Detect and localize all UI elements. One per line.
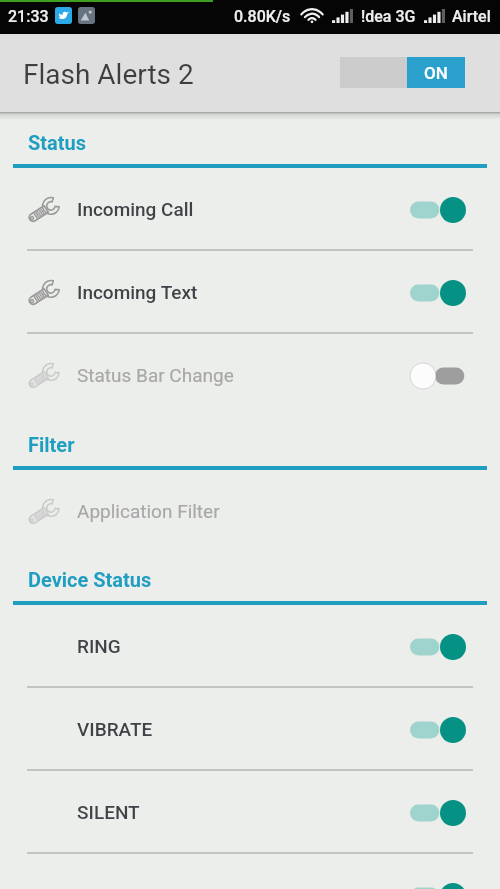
button[interactable]: RING xyxy=(0,605,500,688)
button[interactable]: SILENT xyxy=(0,771,500,854)
staticText: Filter xyxy=(28,433,75,456)
staticText: Incoming Call xyxy=(77,198,194,220)
staticText: VIBRATE xyxy=(77,718,153,740)
staticText: ON xyxy=(424,63,448,83)
staticText: Device Status xyxy=(28,568,152,591)
staticText: 0.80K/s xyxy=(234,7,291,26)
staticText: Application Filter xyxy=(77,500,220,522)
staticText: !dea 3G xyxy=(361,7,416,26)
button[interactable]: Incoming Call xyxy=(0,168,500,251)
staticText: SILENT xyxy=(77,801,140,823)
staticText: RING xyxy=(77,635,121,657)
button[interactable]: Status Bar Change xyxy=(0,334,500,417)
staticText: 21:33 xyxy=(8,7,49,26)
staticText: Status xyxy=(28,131,87,154)
staticText: Incoming Text xyxy=(77,281,198,303)
staticText: Flash Alerts 2 xyxy=(23,58,194,91)
button[interactable]: Incoming Text xyxy=(0,251,500,334)
staticText: Airtel xyxy=(452,7,491,26)
button[interactable]: Application Filter xyxy=(0,470,500,553)
button[interactable]: Flash Alerts master switch, on xyxy=(340,57,465,88)
button[interactable]: OTHER xyxy=(0,854,500,889)
button[interactable]: VIBRATE xyxy=(0,688,500,771)
staticText: Status Bar Change xyxy=(77,364,234,386)
